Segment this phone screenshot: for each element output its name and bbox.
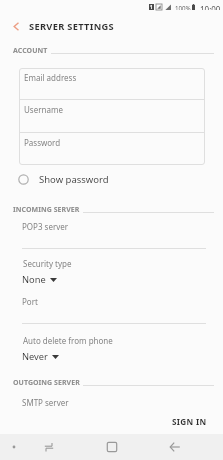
button[interactable]: SIGN IN <box>156 411 223 432</box>
staticText: Auto delete from phone <box>23 335 113 346</box>
staticText: INCOMING SERVER <box>13 205 80 215</box>
staticText: Password <box>24 137 61 148</box>
button[interactable]: Home <box>99 434 125 460</box>
staticText: Email address <box>24 72 77 83</box>
staticText: 1 <box>150 4 153 10</box>
staticText: SMTP server <box>22 397 69 408</box>
button[interactable]: POP3 server <box>0 221 223 249</box>
staticText: Port <box>22 296 38 307</box>
button[interactable]: SMTP server <box>0 397 223 408</box>
staticText: Security type <box>23 258 72 269</box>
button[interactable]: Username <box>19 100 205 132</box>
staticText: SERVER SETTINGS <box>29 20 114 33</box>
staticText: OUTGOING SERVER <box>13 378 80 388</box>
staticText: 100% <box>175 4 191 10</box>
staticText: Never <box>22 350 48 363</box>
staticText: Username <box>24 104 63 115</box>
staticText: ACCOUNT <box>13 46 48 56</box>
staticText: Show password <box>39 173 109 186</box>
button[interactable]: Port <box>0 296 223 324</box>
button[interactable]: Show password <box>0 172 223 187</box>
button[interactable]: Back <box>3 15 29 37</box>
staticText: 10:00 <box>200 4 221 10</box>
staticText: SIGN IN <box>172 416 207 427</box>
button[interactable]: Password <box>19 133 205 165</box>
button[interactable]: Auto delete from phone <box>0 335 223 363</box>
button[interactable]: Menu <box>1 434 27 460</box>
button[interactable]: Email address <box>19 68 205 99</box>
staticText: POP3 server <box>22 221 69 232</box>
button[interactable]: Security type <box>0 258 223 286</box>
button[interactable]: Recent apps <box>36 434 62 460</box>
staticText: None <box>22 273 46 286</box>
button[interactable]: Back <box>162 434 188 460</box>
